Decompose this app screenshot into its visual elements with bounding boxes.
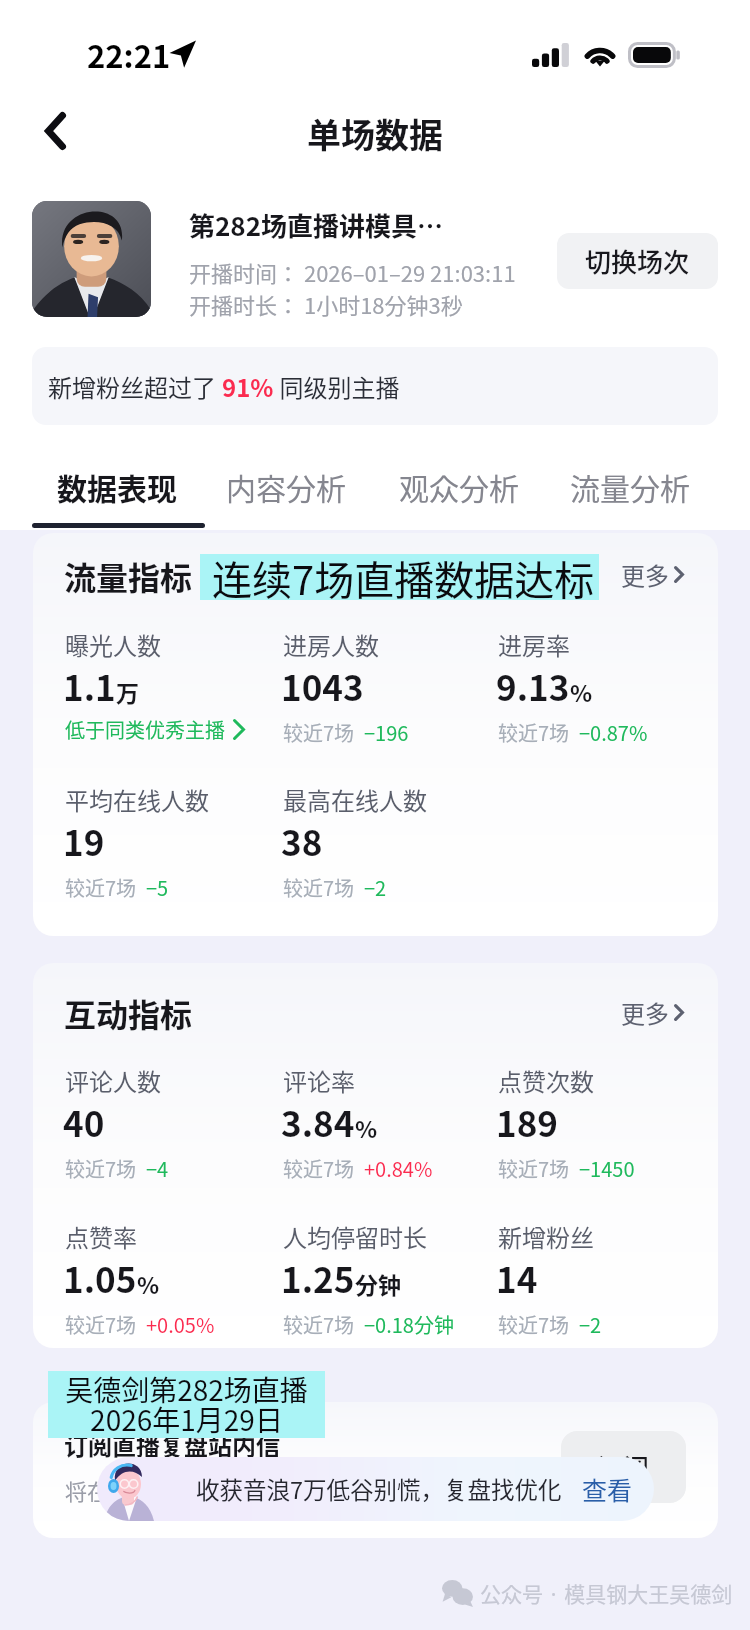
staticText: 点赞率 <box>65 1219 137 1254</box>
staticText: 同级别主播 <box>274 369 400 404</box>
button[interactable]: 低于同类优秀主播 <box>65 715 245 744</box>
staticText: 40 <box>63 1096 105 1147</box>
staticText: 曝光人数 <box>65 627 161 662</box>
staticText: −5 <box>146 873 169 902</box>
staticText: 38 <box>281 815 323 866</box>
staticText: 1.25 <box>281 1252 355 1303</box>
button[interactable]: 订阅 <box>561 1431 686 1503</box>
staticText: 189 <box>496 1096 558 1147</box>
staticText: 流量分析 <box>570 465 690 508</box>
staticText: 收获音浪7万低谷别慌，复盘找优化 <box>196 1472 562 1506</box>
button[interactable]: Back <box>18 92 92 170</box>
staticText: 观众分析 <box>399 465 519 508</box>
staticText: 更多 <box>621 557 669 592</box>
staticText: 进房人数 <box>283 627 379 662</box>
button[interactable]: 流量分析 <box>554 455 706 517</box>
staticText: 订阅直播复盘站内信 <box>64 1427 280 1462</box>
button[interactable]: 更多 <box>617 991 688 1034</box>
staticText: +0.05% <box>146 1310 215 1339</box>
staticText: 3.84 <box>281 1096 355 1147</box>
staticText: % <box>570 675 593 708</box>
button[interactable]: 内容分析 <box>210 455 362 517</box>
button[interactable]: 数据表现 <box>41 455 193 517</box>
staticText: 新增粉丝超过了 <box>48 369 222 404</box>
staticText: 评论人数 <box>65 1063 161 1098</box>
staticText: 较近7场 <box>498 1154 570 1183</box>
staticText: 新增粉丝 <box>498 1219 594 1254</box>
staticText: 互动指标 <box>64 990 193 1036</box>
staticText: 91% <box>222 369 274 404</box>
staticText: −196 <box>364 718 409 747</box>
staticText: 开播时长： 1小时18分钟3秒 <box>189 288 463 320</box>
staticText: 较近7场 <box>283 1154 355 1183</box>
staticText: 将在直播结束后推送 <box>65 1474 264 1506</box>
staticText: 订阅 <box>597 1448 650 1486</box>
button[interactable]: 切换场次 <box>557 233 718 289</box>
staticText: 19 <box>63 815 105 866</box>
staticText: 流量指标 <box>64 553 193 599</box>
staticText: 更多 <box>621 995 669 1030</box>
button[interactable]: 更多 <box>617 553 688 596</box>
staticText: 平均在线人数 <box>65 782 209 817</box>
staticText: 14 <box>496 1252 538 1303</box>
staticText: 第282场直播讲模具… <box>189 206 444 244</box>
staticText: −2 <box>364 873 387 902</box>
staticText: 较近7场 <box>65 1154 137 1183</box>
staticText: 点赞次数 <box>498 1063 594 1098</box>
staticText: 连续7场直播数据达标 <box>212 549 595 607</box>
staticText: 单场数据 <box>0 109 750 158</box>
staticText: 1.05 <box>63 1252 137 1303</box>
staticText: 数据表现 <box>57 465 177 508</box>
staticText: 低于同类优秀主播 <box>65 715 225 744</box>
staticText: −0.18分钟 <box>364 1310 454 1339</box>
staticText: 1043 <box>281 660 364 711</box>
staticText: 开播时间： 2026–01–29 21:03:11 <box>189 256 516 288</box>
staticText: −2 <box>579 1310 602 1339</box>
button[interactable]: 观众分析 <box>383 455 535 517</box>
staticText: 评论率 <box>283 1063 355 1098</box>
staticText: 查看 <box>582 1471 633 1507</box>
staticText: −1450 <box>579 1154 635 1183</box>
staticText: 万 <box>116 675 139 708</box>
staticText: 较近7场 <box>498 718 570 747</box>
staticText: 切换场次 <box>585 242 690 280</box>
staticText: +0.84% <box>364 1154 433 1183</box>
staticText: 较近7场 <box>283 873 355 902</box>
staticText: 9.13 <box>496 660 570 711</box>
staticText: −4 <box>146 1154 169 1183</box>
staticText: 人均停留时长 <box>283 1219 427 1254</box>
staticText: 最高在线人数 <box>283 782 427 817</box>
button[interactable]: 收获音浪7万低谷别慌，复盘找优化 <box>97 1457 654 1521</box>
staticText: 较近7场 <box>498 1310 570 1339</box>
staticText: −0.87% <box>579 718 648 747</box>
staticText: 公众号 · 模具钢大王吴德剑 <box>480 1578 733 1608</box>
staticText: 较近7场 <box>283 1310 355 1339</box>
staticText: % <box>137 1267 160 1300</box>
staticText: 进房率 <box>498 627 570 662</box>
staticText: 较近7场 <box>65 873 137 902</box>
staticText: 吴德剑第282场直播 <box>48 1369 325 1410</box>
staticText: 分钟 <box>355 1267 401 1300</box>
staticText: 1.1 <box>63 660 116 711</box>
staticText: 2026年1月29日 <box>48 1399 325 1440</box>
staticText: % <box>355 1111 378 1144</box>
staticText: 较近7场 <box>65 1310 137 1339</box>
staticText: 22:21 <box>87 32 171 77</box>
staticText: 较近7场 <box>283 718 355 747</box>
staticText: 内容分析 <box>226 465 346 508</box>
